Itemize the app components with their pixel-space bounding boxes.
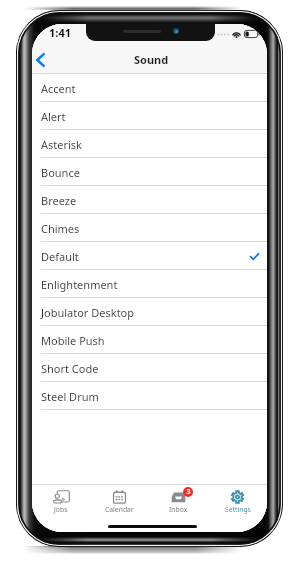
staticText: Enlightenment: [41, 277, 118, 292]
staticText: Alert: [41, 109, 66, 124]
staticText: 3: [186, 487, 191, 497]
button[interactable]: Chimes: [32, 214, 267, 242]
staticText: Bounce: [41, 165, 80, 180]
staticText: Breeze: [41, 193, 77, 208]
staticText: Settings: [225, 505, 251, 514]
button[interactable]: 3: [149, 485, 208, 514]
button[interactable]: Steel Drum: [32, 382, 267, 410]
staticText: Default: [41, 249, 79, 264]
button[interactable]: Calendar: [90, 485, 149, 514]
staticText: Sound: [134, 52, 169, 67]
staticText: 1:41: [49, 25, 71, 40]
staticText: Chimes: [41, 221, 80, 236]
staticText: Mobile Push: [41, 333, 105, 348]
button[interactable]: Jobulator Desktop: [32, 298, 267, 326]
staticText: Asterisk: [41, 137, 82, 152]
staticText: Steel Drum: [41, 389, 99, 404]
button[interactable]: Breeze: [32, 186, 267, 214]
button[interactable]: Accent: [32, 74, 267, 102]
staticText: Accent: [41, 81, 76, 96]
button[interactable]: Default: [32, 242, 267, 270]
button[interactable]: Mobile Push: [32, 326, 267, 354]
staticText: Short Code: [41, 361, 99, 376]
button[interactable]: Enlightenment: [32, 270, 267, 298]
staticText: Calendar: [105, 505, 134, 514]
button[interactable]: Asterisk: [32, 130, 267, 158]
button[interactable]: Bounce: [32, 158, 267, 186]
button[interactable]: Back: [32, 45, 49, 75]
button[interactable]: Jobs: [32, 485, 90, 514]
staticText: Jobs: [54, 505, 68, 514]
button[interactable]: Settings: [208, 485, 267, 514]
staticText: Inbox: [169, 505, 188, 514]
button[interactable]: Alert: [32, 102, 267, 130]
button[interactable]: Short Code: [32, 354, 267, 382]
staticText: Jobulator Desktop: [41, 305, 135, 320]
